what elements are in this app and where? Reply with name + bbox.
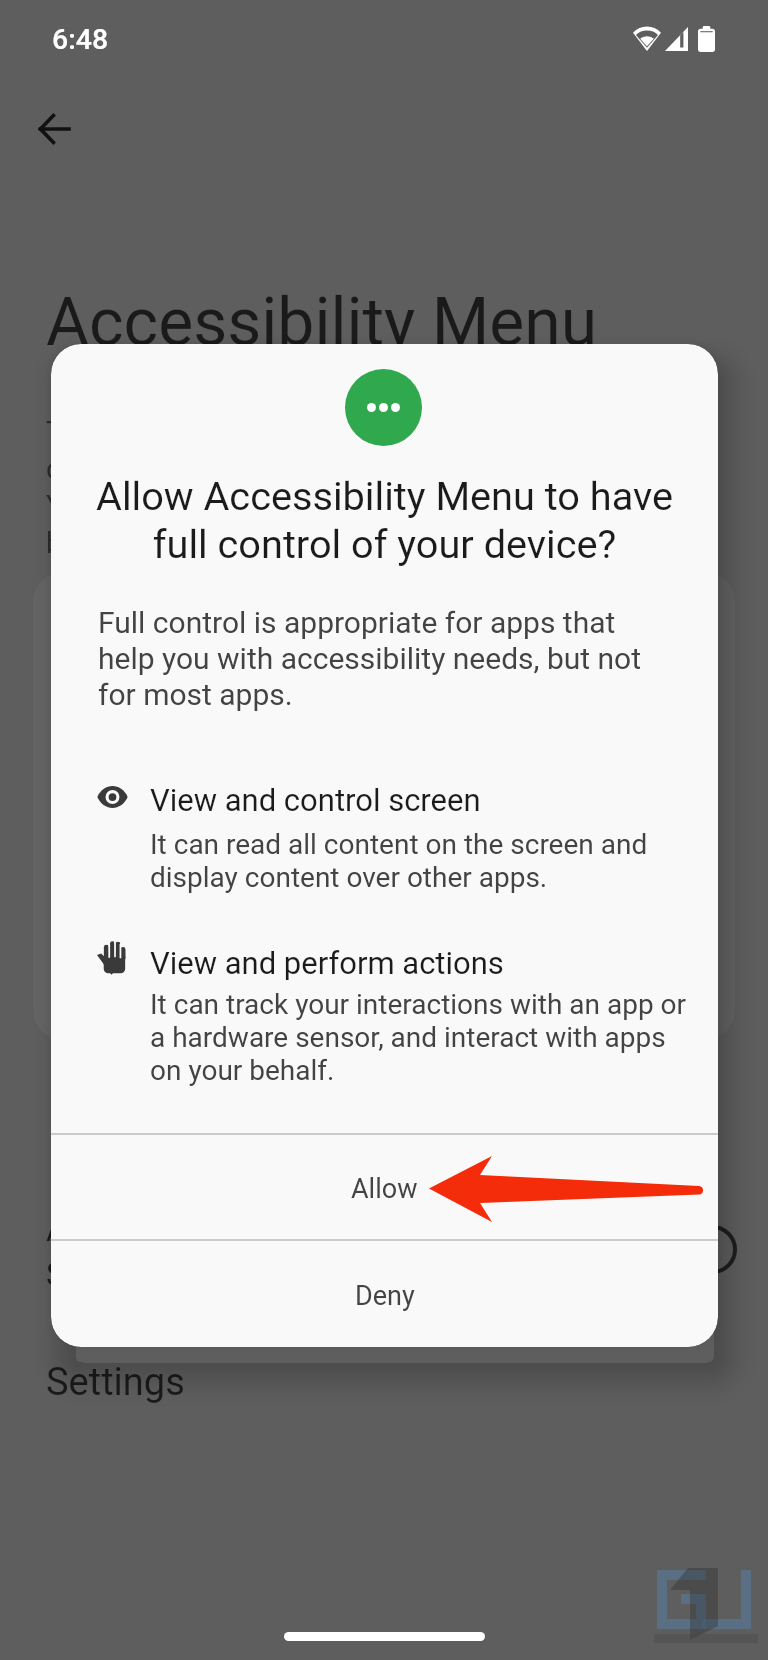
staticText: Allow Accessibility Menu to have full co…: [88, 473, 681, 568]
staticText: It can read all content on the screen an…: [150, 828, 695, 894]
staticText: Allow: [351, 1173, 418, 1205]
staticText: Accessibility Shortcut: [46, 1210, 231, 1294]
staticText: Settings: [46, 1360, 185, 1405]
staticText: The Accessibility Menu provides a large …: [46, 415, 556, 560]
staticText: It can track your interactions with an a…: [150, 988, 695, 1087]
staticText: 6:48: [52, 23, 109, 56]
button[interactable]: Allow: [51, 1136, 718, 1242]
staticText: View and perform actions: [150, 945, 504, 981]
staticText: View and control screen: [150, 782, 481, 818]
button[interactable]: Deny: [51, 1242, 718, 1347]
button[interactable]: Back: [24, 99, 84, 159]
staticText: Accessibility Menu: [46, 284, 598, 361]
staticText: Full control is appropriate for apps tha…: [98, 605, 643, 712]
staticText: Deny: [355, 1280, 415, 1312]
